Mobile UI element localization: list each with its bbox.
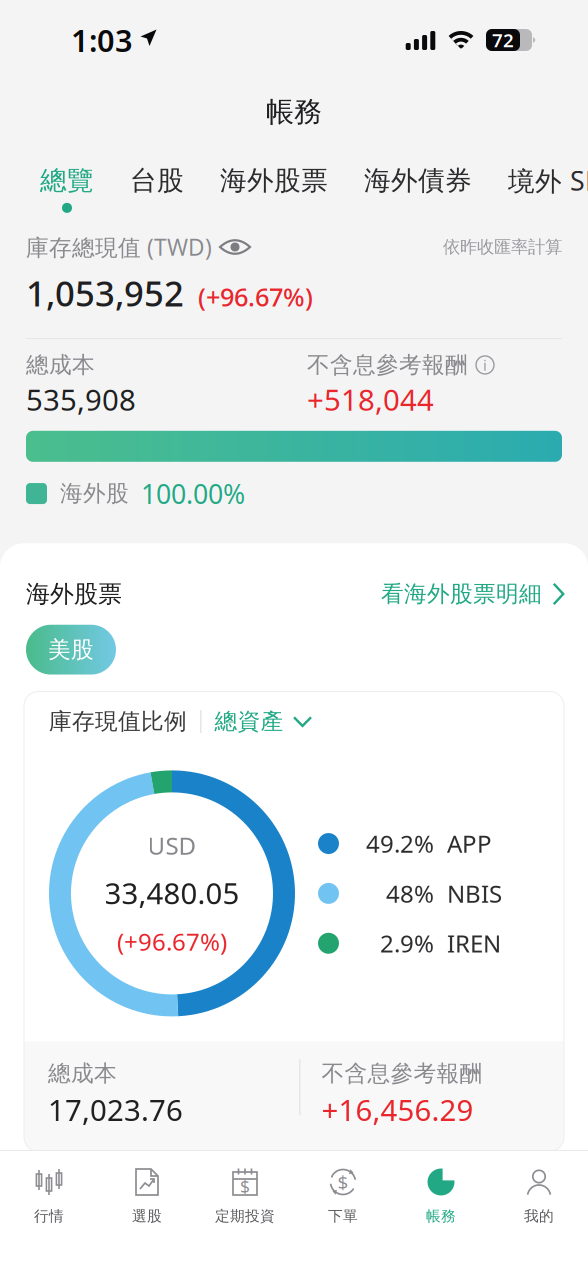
staticText: 2.9% <box>380 927 434 959</box>
staticText: (+96.67%) <box>198 280 313 313</box>
button[interactable]: 總覽 <box>22 155 112 213</box>
staticText: 海外股票 <box>26 579 122 609</box>
staticText: 境外 SN <box>508 163 588 198</box>
staticText: 我的 <box>524 1207 554 1225</box>
staticText: 海外股票 <box>220 164 328 197</box>
button[interactable]: 境外 SN <box>490 154 588 214</box>
staticText: 海外股 <box>60 480 129 507</box>
staticText: 100.00% <box>141 476 245 511</box>
staticText: 72 <box>492 28 514 52</box>
staticText: 17,023.76 <box>48 1090 183 1129</box>
staticText: 帳務 <box>266 95 322 129</box>
staticText: 33,480.05 <box>104 873 239 912</box>
staticText: 美股 <box>48 636 94 663</box>
button[interactable]: $ <box>294 1151 392 1280</box>
button[interactable]: 美股 <box>26 625 116 674</box>
staticText: 行情 <box>34 1207 64 1225</box>
staticText: 庫存現值比例 <box>49 708 187 735</box>
staticText: 48% <box>386 877 434 909</box>
staticText: 台股 <box>130 164 184 197</box>
button[interactable]: 海外債券 <box>346 155 490 213</box>
staticText: +16,456.29 <box>321 1090 473 1129</box>
staticText: USD <box>147 830 196 861</box>
button[interactable]: 海外股票 <box>202 155 346 213</box>
staticText: 49.2% <box>366 828 434 859</box>
staticText: (+96.67%) <box>117 925 227 957</box>
staticText: 庫存總現值 (TWD) <box>26 232 212 262</box>
button[interactable]: 看海外股票明細 <box>381 580 565 608</box>
button[interactable]: 總資產 <box>214 708 312 735</box>
staticText: 總覽 <box>40 164 94 197</box>
staticText: APP <box>447 828 492 859</box>
staticText: 總成本 <box>48 1059 117 1087</box>
staticText: 不含息參考報酬 <box>307 351 468 379</box>
staticText: $ <box>337 1170 348 1194</box>
staticText: 1,053,952 <box>26 270 184 316</box>
staticText: 選股 <box>132 1207 162 1225</box>
staticText: $ <box>240 1175 250 1198</box>
staticText: IREN <box>447 927 501 959</box>
button[interactable]: 台股 <box>112 155 202 213</box>
staticText: 海外債券 <box>364 164 472 197</box>
staticText: 下單 <box>328 1207 358 1225</box>
staticText: 依昨收匯率計算 <box>443 236 562 258</box>
staticText: 總成本 <box>26 351 95 379</box>
staticText: i <box>483 355 487 375</box>
button[interactable]: $ <box>196 1151 294 1280</box>
staticText: 看海外股票明細 <box>381 580 542 608</box>
button[interactable]: 我的 <box>490 1151 588 1280</box>
button[interactable]: 行情 <box>0 1151 98 1280</box>
staticText: NBIS <box>447 877 502 909</box>
staticText: 535,908 <box>26 380 136 419</box>
staticText: +518,044 <box>307 380 434 419</box>
staticText: 1:03 <box>71 20 133 60</box>
button[interactable]: 選股 <box>98 1151 196 1280</box>
button[interactable]: 帳務 <box>392 1151 490 1280</box>
staticText: 帳務 <box>426 1207 456 1225</box>
staticText: 總資產 <box>214 708 283 735</box>
staticText: 不含息參考報酬 <box>321 1059 482 1087</box>
staticText: 定期投資 <box>215 1207 275 1225</box>
